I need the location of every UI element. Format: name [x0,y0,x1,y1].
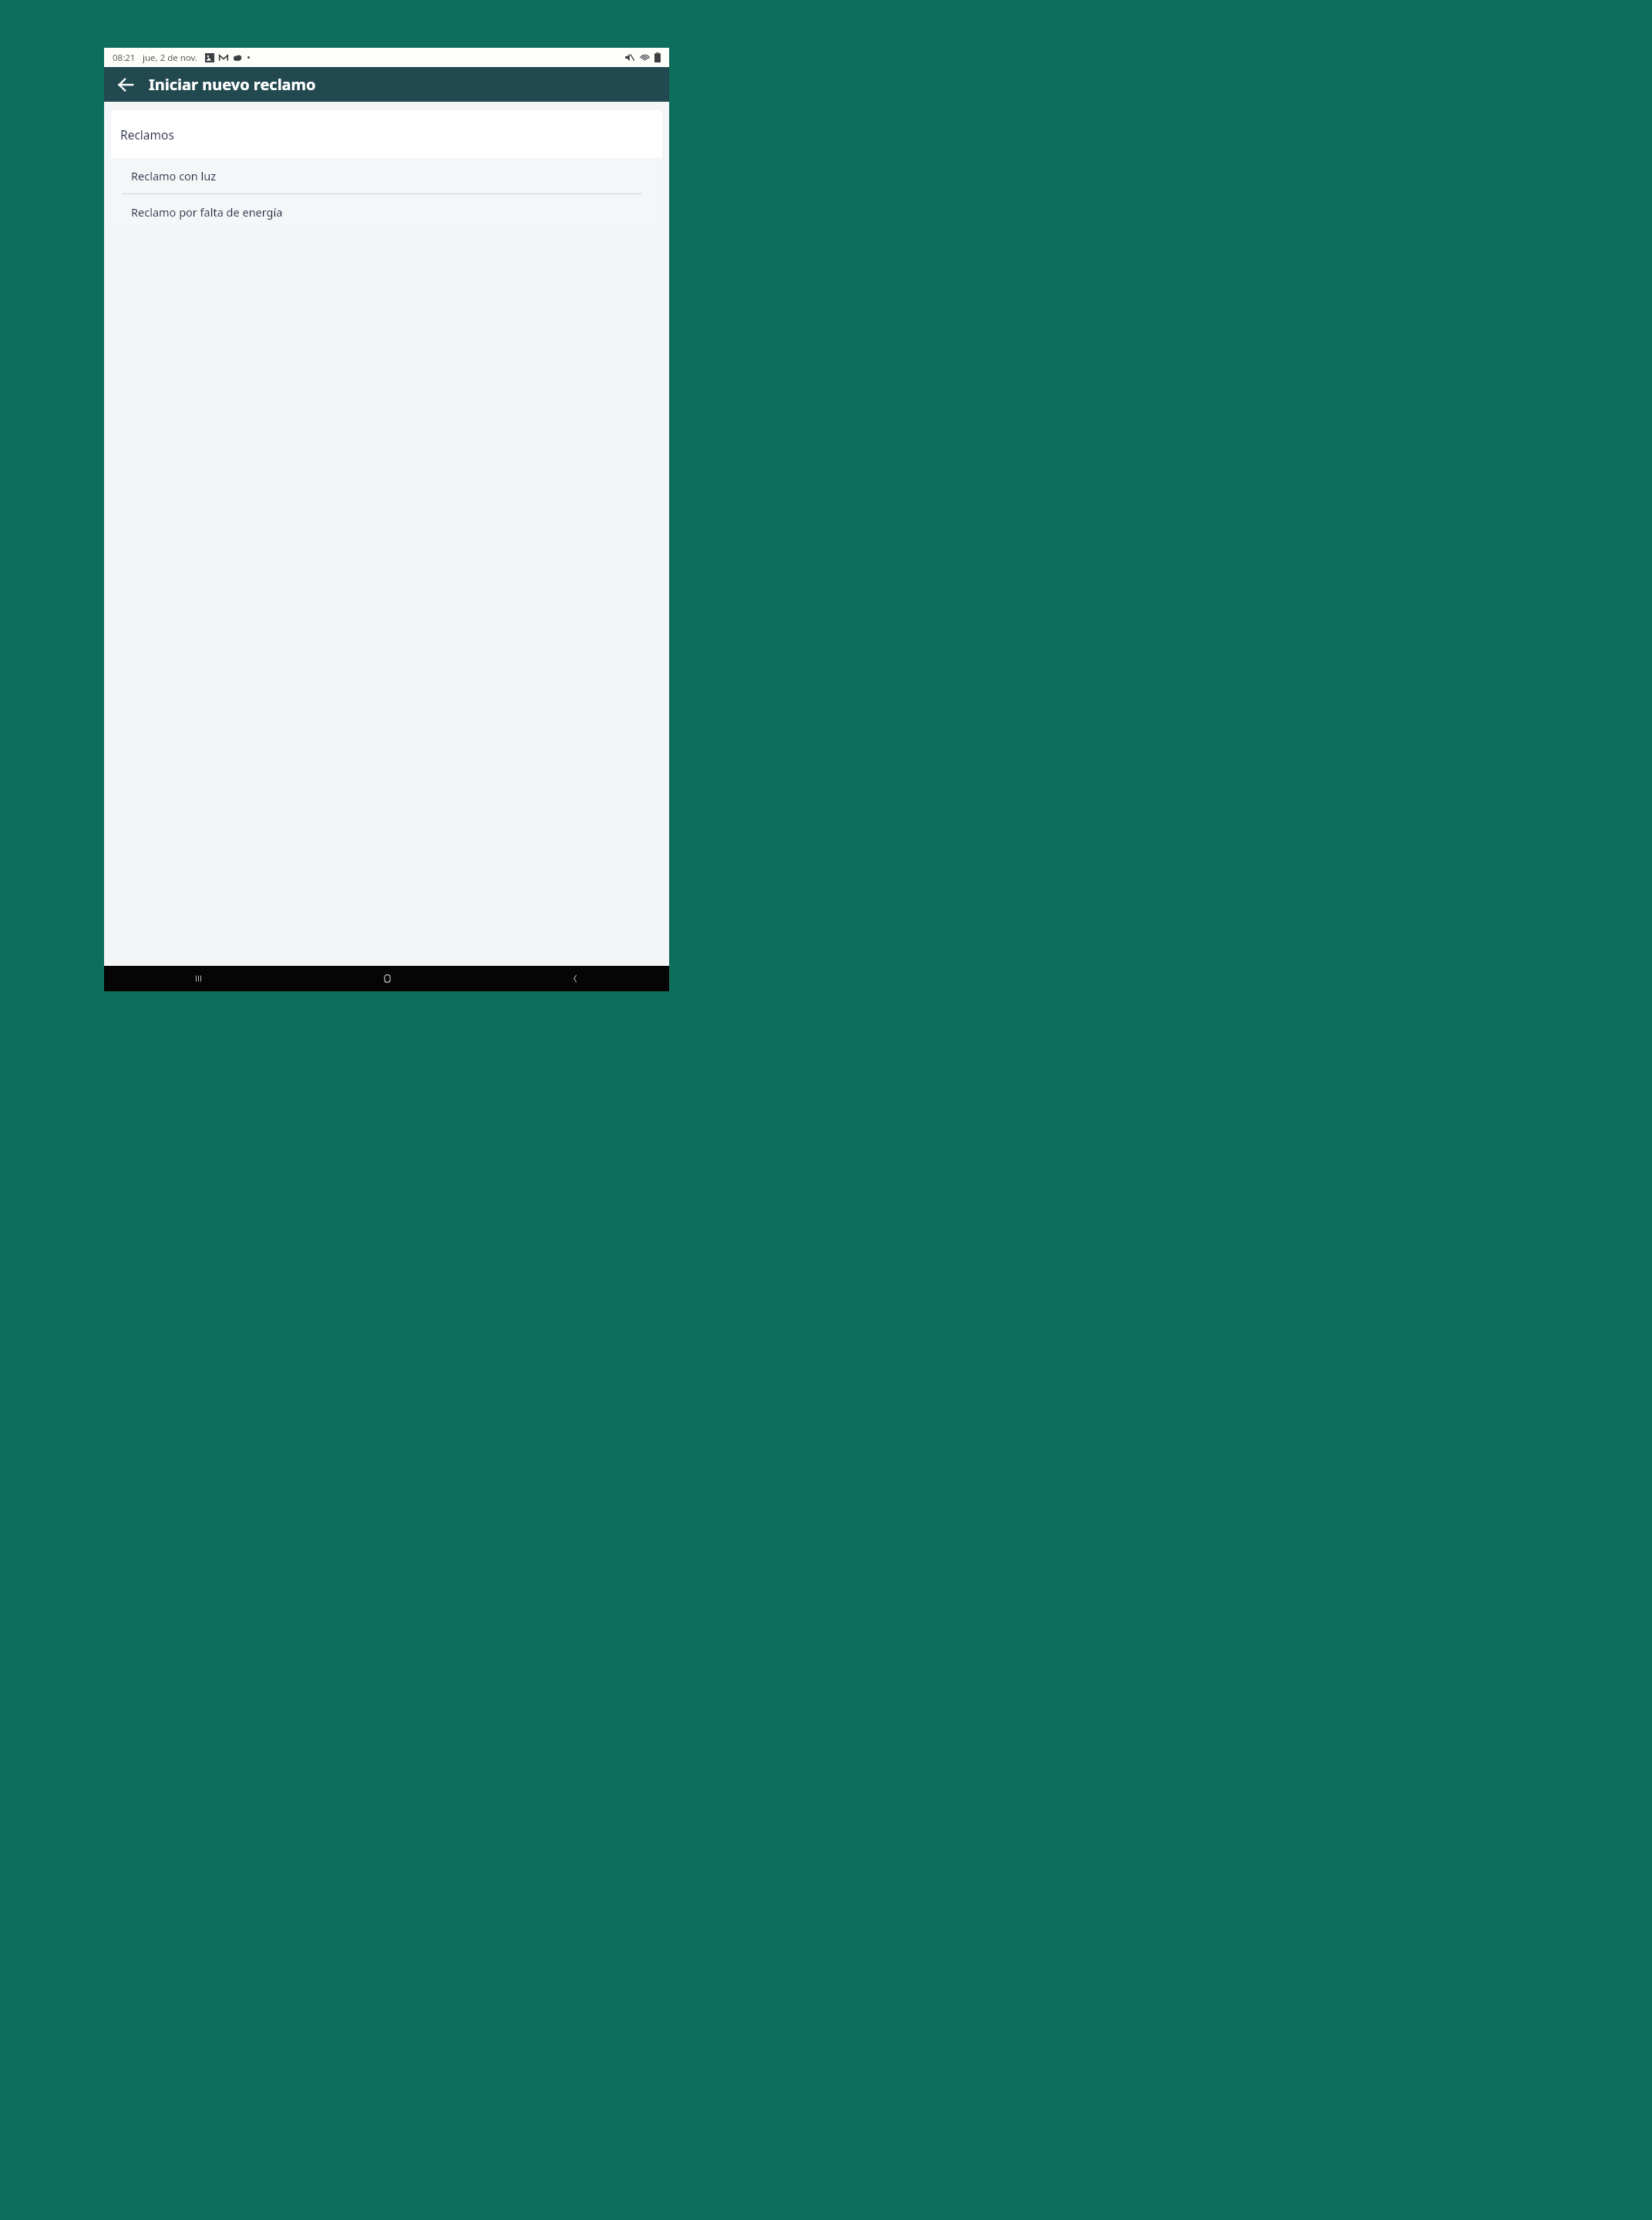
button[interactable]: Reclamo con luz [111,158,662,193]
button[interactable]: Back [481,966,669,991]
staticText: Iniciar nuevo reclamo [149,74,316,95]
button[interactable]: Recent apps [104,966,293,991]
staticText: jue, 2 de nov. [143,52,198,64]
staticText: Reclamos [120,126,174,143]
button[interactable]: Back [110,69,141,100]
staticText: 08:21 [113,52,136,64]
button[interactable]: Reclamo por falta de energía [111,194,662,230]
staticText: Reclamo con luz [131,168,217,183]
staticText: Reclamo por falta de energía [131,204,283,220]
button[interactable]: Home [293,966,481,991]
